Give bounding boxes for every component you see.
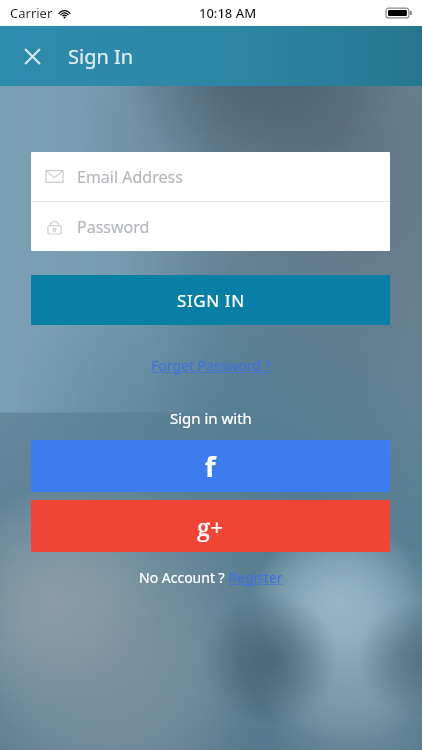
- staticText: SIGN IN: [177, 289, 245, 312]
- button[interactable]: Password: [31, 202, 390, 251]
- staticText: Sign in with: [170, 408, 252, 428]
- staticText: 10:18 AM: [199, 4, 257, 22]
- staticText: No Account ? Register: [139, 568, 283, 587]
- button[interactable]: Sign in with Google Plus: [31, 500, 390, 552]
- button[interactable]: Email Address: [31, 152, 390, 201]
- button[interactable]: No Account ? Register: [139, 568, 283, 587]
- staticText: Carrier: [10, 4, 53, 22]
- staticText: f: [205, 448, 216, 485]
- staticText: Sign In: [68, 43, 134, 70]
- staticText: Forget Password ?: [151, 356, 271, 375]
- staticText: g+: [197, 510, 224, 543]
- staticText: Email Address: [77, 166, 183, 188]
- button[interactable]: SIGN IN: [31, 275, 390, 325]
- button[interactable]: Close: [12, 36, 52, 76]
- button[interactable]: Sign in with Facebook: [31, 440, 390, 492]
- button[interactable]: Forget Password ?: [145, 353, 277, 378]
- staticText: Password: [77, 216, 150, 238]
